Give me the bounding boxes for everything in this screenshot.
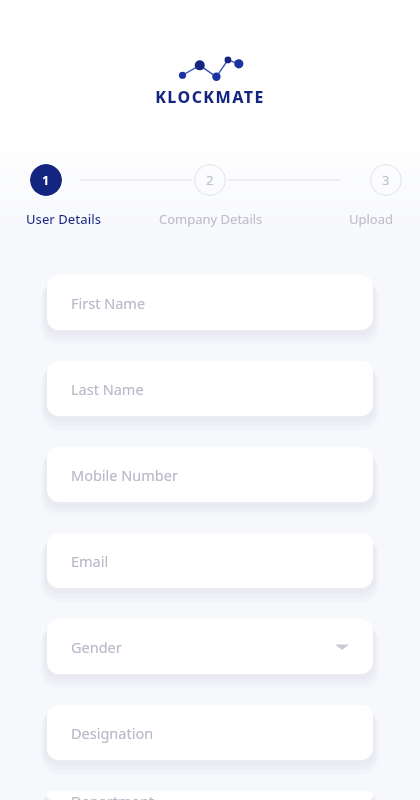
button[interactable]: Designation	[47, 705, 373, 760]
staticText: Email	[71, 551, 109, 571]
button[interactable]: Mobile Number	[47, 447, 373, 502]
button[interactable]: Last Name	[47, 361, 373, 416]
button[interactable]: Email	[47, 533, 373, 588]
button[interactable]: Upload	[345, 208, 398, 230]
button[interactable]: First Name	[47, 275, 373, 330]
button[interactable]: User Details	[22, 208, 105, 230]
staticText: Department	[71, 791, 154, 800]
button[interactable]: Gender	[47, 619, 373, 674]
button[interactable]: Step 1, User Details	[30, 164, 62, 196]
staticText: Last Name	[71, 379, 144, 399]
button[interactable]: Step 2, Company Details	[194, 164, 226, 196]
staticText: Mobile Number	[71, 465, 178, 485]
other: Open gender options	[335, 640, 349, 654]
staticText: First Name	[71, 293, 146, 313]
staticText: 3	[382, 171, 390, 189]
staticText: Gender	[71, 637, 122, 657]
staticText: Designation	[71, 723, 154, 743]
staticText: KLOCKMATE	[155, 86, 265, 108]
staticText: 1	[42, 171, 50, 189]
staticText: 2	[206, 171, 214, 189]
button[interactable]: Step 3, Upload	[370, 164, 402, 196]
button[interactable]: Department	[47, 791, 373, 800]
button[interactable]: Company Details	[155, 208, 267, 230]
